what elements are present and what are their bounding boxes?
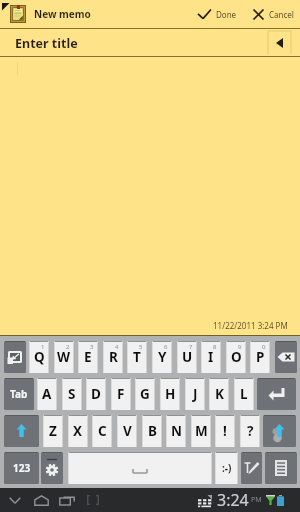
button[interactable]: Z [43,415,63,447]
staticText: O [231,348,242,366]
button[interactable]: R [103,341,123,373]
button[interactable]: B [142,415,162,447]
button[interactable]: Shift [263,415,296,447]
button[interactable]: Back [2,488,28,512]
button[interactable]: H [160,378,180,410]
staticText: Done [216,9,237,20]
staticText: L [240,385,248,403]
button[interactable]: Expand [267,31,292,54]
staticText: 123 [13,461,31,475]
staticText: I [208,348,214,366]
staticText: N [171,422,182,440]
button[interactable]: ! [215,415,235,447]
staticText: J [193,385,198,403]
button[interactable]: M [191,415,211,447]
button[interactable]: C [92,415,112,447]
staticText: 2 [66,343,70,351]
button[interactable]: Y [152,341,172,373]
staticText: B [148,422,157,440]
staticText: P [256,348,265,366]
staticText: 3:24 [217,489,249,511]
staticText: W [57,348,71,366]
button[interactable]: Recent apps [54,488,80,512]
staticText: Tab [10,387,28,401]
staticText: U [182,348,193,366]
button[interactable]: Tab [4,378,34,410]
staticText: V [123,422,132,440]
staticText: R [109,348,118,366]
button[interactable]: Settings [41,452,63,484]
button[interactable]: Enter [257,378,296,410]
staticText: K [215,385,224,403]
button[interactable]: P [250,341,270,373]
button[interactable]: Cancel [249,0,297,28]
button[interactable]: :-) [215,452,238,484]
staticText: 1 [41,343,45,351]
button[interactable]: D [86,378,106,410]
button[interactable]: J [185,378,205,410]
staticText: 9 [238,343,242,351]
staticText: X [73,422,83,440]
staticText: PM [251,495,262,505]
button[interactable]: L [234,378,254,410]
button[interactable]: E [78,341,98,373]
button[interactable]: A [37,378,57,410]
staticText: S [68,385,76,403]
button[interactable]: Handwriting [241,452,262,484]
staticText: Z [49,422,57,440]
button[interactable]: U [177,341,197,373]
staticText: 0 [262,343,266,351]
staticText: D [91,385,101,403]
button[interactable]: I [201,341,221,373]
staticText: New memo [34,7,91,21]
button[interactable]: Shift [4,415,39,447]
button[interactable]: F [111,378,131,410]
staticText: A [42,385,52,403]
staticText: ? [247,422,254,440]
button[interactable]: Hide keyboard [4,341,26,373]
button[interactable]: Q [29,341,49,373]
staticText: Y [158,348,167,366]
button[interactable]: N [166,415,186,447]
staticText: Enter title [15,35,78,52]
staticText: 7 [189,343,193,351]
button[interactable]: G [135,378,155,410]
staticText: 11/22/2011 3:24 PM [213,320,288,331]
button[interactable]: Home [28,488,54,512]
button[interactable]: V [117,415,137,447]
staticText: 3 [90,343,94,351]
staticText: :-) [222,461,232,475]
staticText: M [195,422,208,440]
staticText: Q [34,348,45,366]
button[interactable]: Backspace [275,341,297,373]
button[interactable]: T [127,341,147,373]
staticText: Cancel [269,9,294,20]
staticText: C [98,422,107,440]
staticText: 5 [139,343,143,351]
staticText: E [84,348,92,366]
staticText: ! [223,422,227,440]
button[interactable]: X [68,415,88,447]
button[interactable]: O [226,341,246,373]
staticText: F [117,385,125,403]
button[interactable]: Clipboard [265,452,297,484]
staticText: 4 [115,343,119,351]
staticText: T [133,348,141,366]
button[interactable]: W [54,341,74,373]
button[interactable]: 123 [4,452,39,484]
button[interactable]: ? [240,415,260,447]
staticText: 8 [213,343,217,351]
button[interactable]: Done [194,0,240,28]
button[interactable]: S [62,378,82,410]
button[interactable]: K [209,378,229,410]
staticText: H [165,385,176,403]
staticText: 6 [164,343,168,351]
button[interactable]: Show keyboard [80,488,106,512]
button[interactable]: Space [68,452,212,484]
staticText: G [140,385,150,403]
